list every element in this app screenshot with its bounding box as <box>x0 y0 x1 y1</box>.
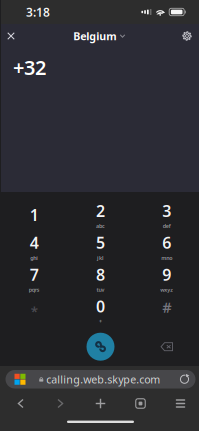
button[interactable]: New Tab <box>80 392 120 414</box>
button[interactable]: 7 <box>1 256 67 287</box>
staticText: 9 <box>162 264 171 285</box>
button[interactable]: * <box>1 287 67 319</box>
staticText: Belgium <box>73 29 116 43</box>
staticText: 2 <box>96 200 105 221</box>
button[interactable]: Delete <box>134 330 199 364</box>
button[interactable]: 5 <box>67 224 134 256</box>
staticText: + <box>99 318 102 325</box>
staticText: jkl <box>97 254 104 261</box>
staticText: 0 <box>96 296 105 317</box>
staticText: * <box>31 302 38 320</box>
button[interactable]: Menu <box>160 392 199 414</box>
button[interactable]: Forward <box>40 392 80 414</box>
button[interactable]: Close <box>1 24 21 48</box>
staticText: 6 <box>162 232 171 253</box>
button[interactable]: 1 <box>1 192 67 224</box>
staticText: tuv <box>96 286 104 293</box>
staticText: +32 <box>13 54 46 81</box>
button[interactable]: 2 <box>67 192 134 224</box>
button[interactable]: 9 <box>134 256 199 287</box>
staticText: mno <box>161 254 172 261</box>
button[interactable]: Call <box>67 330 134 364</box>
button[interactable]: Settings <box>177 24 197 48</box>
button[interactable]: 0 <box>67 287 134 319</box>
staticText: def <box>163 222 171 230</box>
staticText: ghi <box>30 254 38 261</box>
button[interactable]: 6 <box>134 224 199 256</box>
button[interactable]: # <box>134 287 199 319</box>
button[interactable]: 3 <box>134 192 199 224</box>
staticText: 3 <box>162 200 171 221</box>
staticText: # <box>162 297 171 317</box>
button[interactable]: 4 <box>1 224 67 256</box>
button[interactable]: 8 <box>67 256 134 287</box>
staticText: abc <box>96 222 105 230</box>
button[interactable]: Back <box>0 392 40 414</box>
staticText: 1 <box>30 204 39 225</box>
staticText: 3:18 <box>26 4 50 20</box>
staticText: 5 <box>96 232 105 253</box>
staticText: 4 <box>30 232 39 253</box>
button[interactable]: Belgium <box>73 24 125 48</box>
button[interactable]: Reload <box>173 370 195 388</box>
staticText: 8 <box>96 264 105 285</box>
button[interactable]: Tabs <box>120 392 160 414</box>
staticText: pqrs <box>29 286 40 293</box>
staticText: wxyz <box>160 286 173 293</box>
staticText: 7 <box>30 264 39 285</box>
staticText: calling.web.skype.com <box>46 372 160 386</box>
